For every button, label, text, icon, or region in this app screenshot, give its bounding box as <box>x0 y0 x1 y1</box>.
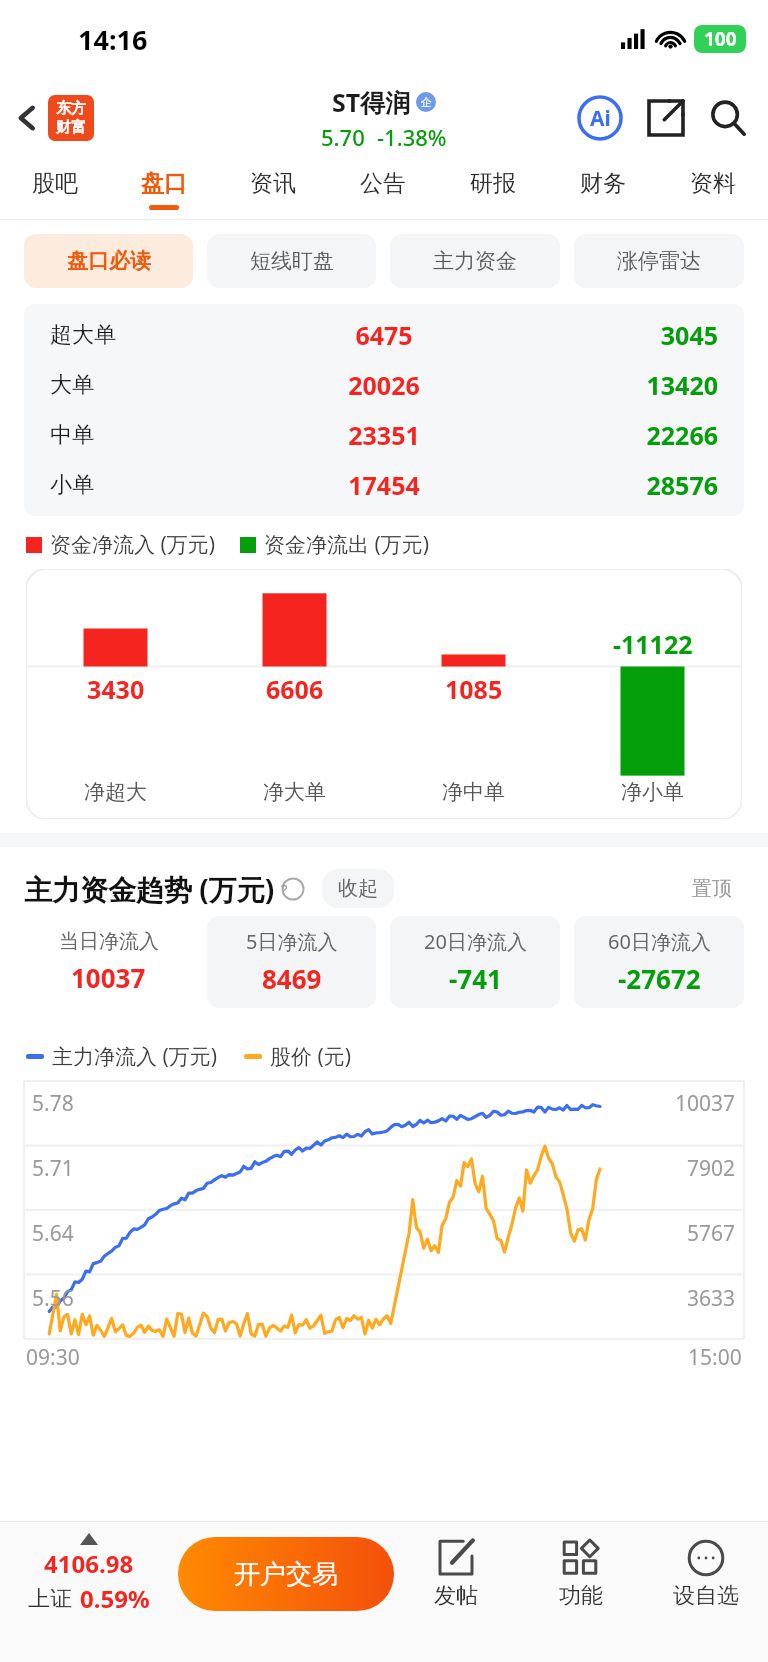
button[interactable]: 超大单 <box>24 310 744 360</box>
staticText: 8469 <box>262 961 322 996</box>
button[interactable]: 中单 <box>24 410 744 460</box>
button[interactable]: 盘口 <box>109 158 218 220</box>
staticText: 中单 <box>50 421 260 449</box>
staticText: 资金净流出 (万元) <box>264 530 430 559</box>
button[interactable]: 公告 <box>328 158 438 220</box>
staticText: ST得润 <box>332 85 411 119</box>
staticText: 资料 <box>690 169 736 198</box>
staticText: 主力资金趋势 (万元) <box>24 870 275 908</box>
staticText: 3430 <box>87 672 145 706</box>
staticText: 盘口 <box>141 169 187 198</box>
staticText: 上证 <box>28 1585 72 1613</box>
staticText: 财富 <box>56 118 86 137</box>
staticText: 3633 <box>687 1284 736 1313</box>
button[interactable]: 60日净流入 <box>574 916 744 1008</box>
staticText: 1085 <box>445 672 503 706</box>
button[interactable]: 发帖 <box>394 1538 518 1610</box>
button[interactable]: 20日净流入 <box>390 916 560 1008</box>
button[interactable]: 股吧 <box>0 158 109 220</box>
staticText: 7902 <box>687 1154 736 1183</box>
staticText: 净小单 <box>621 779 684 805</box>
button[interactable]: 盘口必读 <box>24 234 193 288</box>
staticText: 当日净流入 <box>59 929 159 954</box>
staticText: ? <box>281 879 288 899</box>
staticText: 主力净流入 (万元) <box>52 1042 218 1071</box>
button[interactable]: 4106.98 <box>0 1533 178 1615</box>
button[interactable]: 研报 <box>438 158 548 220</box>
staticText: 财务 <box>580 169 626 198</box>
button[interactable]: 开户交易 <box>178 1537 394 1611</box>
staticText: 13420 <box>508 368 718 402</box>
staticText: 28576 <box>508 468 718 502</box>
staticText: 资金净流入 (万元) <box>50 530 216 559</box>
staticText: 开户交易 <box>234 1558 338 1591</box>
button[interactable]: 小单 <box>24 460 744 510</box>
staticText: 5767 <box>687 1219 736 1248</box>
staticText: 大单 <box>50 371 260 399</box>
staticText: 置顶 <box>692 876 732 901</box>
button[interactable]: 收起 <box>322 869 394 908</box>
staticText: 17454 <box>260 468 508 502</box>
staticText: 10037 <box>675 1089 736 1118</box>
staticText: 功能 <box>559 1582 603 1610</box>
staticText: 5.64 <box>32 1219 74 1248</box>
staticText: 5.71 <box>32 1154 74 1183</box>
staticText: 6606 <box>266 672 324 706</box>
staticText: 23351 <box>260 418 508 452</box>
staticText: 14:16 <box>78 21 148 58</box>
staticText: 15:00 <box>688 1343 742 1372</box>
button[interactable]: 功能 <box>518 1538 643 1610</box>
staticText: 22266 <box>508 418 718 452</box>
staticText: 资讯 <box>250 169 296 198</box>
staticText: 短线盯盘 <box>250 248 334 274</box>
staticText: 100 <box>704 26 737 52</box>
staticText: Ai <box>590 104 611 133</box>
staticText: 净大单 <box>263 779 326 805</box>
staticText: 东方 <box>56 99 86 118</box>
staticText: 收起 <box>338 876 378 901</box>
staticText: -11122 <box>613 627 693 661</box>
staticText: 股价 (元) <box>270 1042 352 1071</box>
staticText: 09:30 <box>26 1343 80 1372</box>
staticText: 20日净流入 <box>424 928 527 955</box>
button[interactable]: 设自选 <box>643 1538 768 1610</box>
staticText: 主力资金 <box>433 248 517 274</box>
staticText: 发帖 <box>434 1582 478 1610</box>
staticText: 净超大 <box>84 779 147 805</box>
staticText: -1.38% <box>377 122 447 152</box>
staticText: 0.59% <box>80 1582 150 1615</box>
staticText: -27672 <box>618 961 701 996</box>
staticText: 公告 <box>360 169 406 198</box>
button[interactable]: Back <box>14 95 94 141</box>
staticText: 股吧 <box>32 169 78 198</box>
staticText: -741 <box>449 961 502 996</box>
staticText: 10037 <box>71 960 146 995</box>
button[interactable]: 资料 <box>658 158 768 220</box>
button[interactable]: 短线盯盘 <box>207 234 376 288</box>
button[interactable]: 财务 <box>548 158 658 220</box>
button[interactable]: Share <box>644 96 688 140</box>
button[interactable]: 大单 <box>24 360 744 410</box>
button[interactable]: 资讯 <box>218 158 328 220</box>
staticText: 60日净流入 <box>608 928 711 955</box>
staticText: 盘口必读 <box>67 248 151 274</box>
button[interactable]: 5日净流入 <box>207 916 376 1008</box>
button[interactable]: AI assistant <box>576 94 624 142</box>
staticText: 5.78 <box>32 1089 74 1118</box>
button[interactable]: 当日净流入 <box>24 916 193 1008</box>
staticText: 设自选 <box>673 1582 739 1610</box>
staticText: 超大单 <box>50 321 260 349</box>
button[interactable]: 主力资金 <box>390 234 560 288</box>
staticText: 企 <box>421 95 432 109</box>
staticText: 涨停雷达 <box>617 248 701 274</box>
staticText: 5.70 <box>321 122 365 152</box>
staticText: 5日净流入 <box>246 928 338 955</box>
staticText: 小单 <box>50 471 260 499</box>
button[interactable]: Search <box>706 96 750 140</box>
button[interactable]: 涨停雷达 <box>574 234 744 288</box>
staticText: 4106.98 <box>44 1547 134 1580</box>
staticText: 5.56 <box>32 1284 74 1313</box>
staticText: 6475 <box>260 318 508 352</box>
button[interactable]: 置顶 <box>678 869 746 908</box>
staticText: 研报 <box>470 169 516 198</box>
